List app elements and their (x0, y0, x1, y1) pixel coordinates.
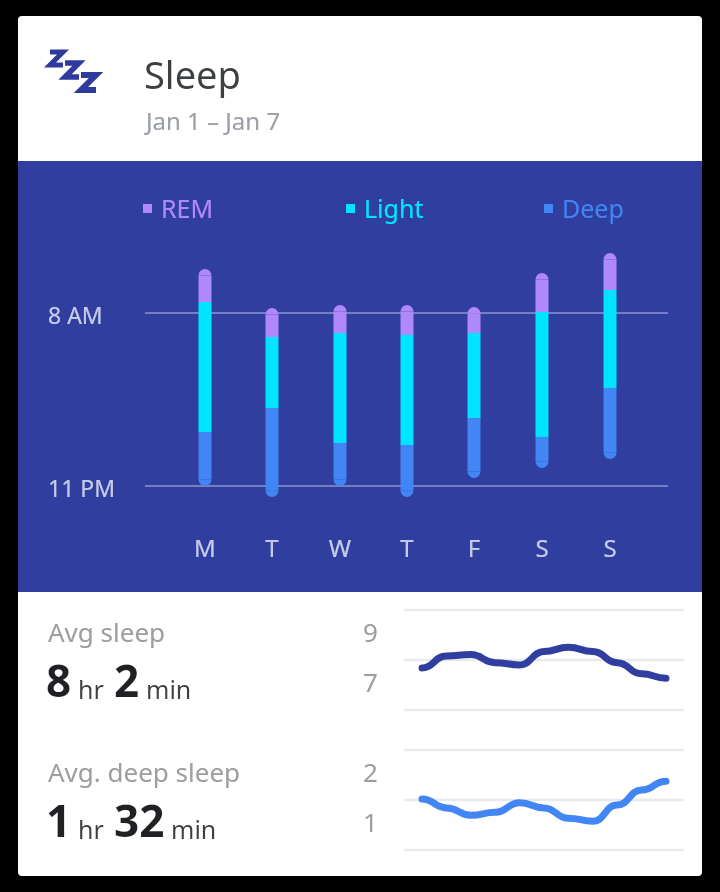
button[interactable]: Avg. deep sleep (18, 732, 702, 872)
staticText: 9 (363, 614, 378, 649)
staticText: M (185, 531, 225, 564)
button[interactable]: Avg sleep (18, 592, 702, 732)
other: Sleep (48, 50, 104, 92)
staticText: REM (161, 191, 214, 225)
staticText: 2 (114, 650, 140, 710)
staticText: 1 (363, 804, 378, 839)
staticText: W (320, 531, 360, 564)
staticText: 8 (46, 650, 72, 710)
staticText: 8 AM (48, 299, 103, 330)
staticText: 7 (363, 664, 378, 699)
staticText: Avg sleep (48, 614, 166, 649)
staticText: S (590, 531, 630, 564)
staticText: F (454, 531, 494, 564)
staticText: 2 (363, 754, 378, 789)
staticText: 1 (46, 790, 72, 850)
staticText: S (522, 531, 562, 564)
staticText: 11 PM (48, 472, 116, 503)
staticText: Jan 1 – Jan 7 (146, 104, 281, 137)
staticText: hr (78, 812, 104, 846)
staticText: 32 (114, 790, 165, 850)
staticText: Light (364, 191, 424, 225)
button[interactable]: Sleep (18, 16, 702, 161)
staticText: Deep (562, 191, 624, 225)
staticText: min (171, 812, 217, 846)
staticText: hr (78, 672, 104, 706)
staticText: min (146, 672, 192, 706)
staticText: T (387, 531, 427, 564)
staticText: Avg. deep sleep (48, 754, 241, 789)
staticText: Sleep (144, 48, 241, 100)
staticText: T (252, 531, 292, 564)
